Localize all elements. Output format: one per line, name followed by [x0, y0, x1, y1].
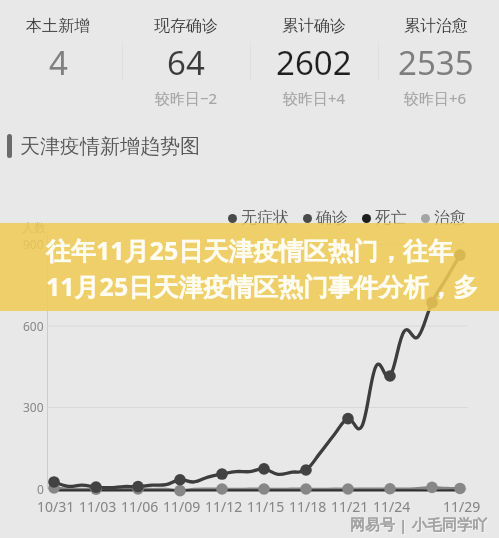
staticText: 11/09: [163, 497, 201, 516]
button[interactable]: 治愈: [421, 208, 466, 228]
staticText: 往年11月25日天津疫情区热门，往年 11月25日天津疫情区热门事件分析，多: [46, 233, 479, 304]
staticText: 无症状: [241, 208, 289, 228]
staticText: 人数: [22, 220, 46, 235]
staticText: 11/24: [373, 497, 411, 516]
button[interactable]: 无症状: [228, 208, 289, 228]
staticText: 死亡: [375, 208, 407, 228]
staticText: 11/06: [121, 497, 159, 516]
staticText: 较昨日+4: [283, 88, 346, 108]
staticText: 小毛同学吖: [412, 516, 487, 535]
staticText: 0: [37, 481, 44, 497]
button[interactable]: 累计治愈: [378, 0, 493, 112]
staticText: 900: [23, 236, 44, 252]
staticText: 小毛同学吖: [413, 517, 488, 536]
staticText: 2602: [276, 40, 352, 85]
staticText: 11/18: [289, 497, 327, 516]
button[interactable]: 现存确诊: [122, 0, 250, 112]
staticText: 累计治愈: [404, 16, 468, 36]
staticText: 较昨日+6: [404, 88, 467, 108]
button[interactable]: 本土新增: [0, 0, 122, 112]
staticText: 确诊: [316, 208, 348, 228]
staticText: 治愈: [434, 208, 466, 228]
staticText: 11/15: [247, 497, 285, 516]
staticText: 11/03: [79, 497, 117, 516]
staticText: |: [400, 516, 409, 536]
button[interactable]: 累计确诊: [250, 0, 378, 112]
staticText: 较昨日−2: [155, 88, 218, 108]
button[interactable]: 确诊: [303, 208, 348, 228]
staticText: 累计确诊: [282, 16, 346, 36]
staticText: 2535: [398, 40, 474, 85]
staticText: |: [399, 515, 408, 535]
staticText: 网易号: [350, 516, 395, 535]
staticText: 11/29: [443, 497, 481, 516]
staticText: 4: [49, 40, 68, 85]
staticText: 11/12: [205, 497, 243, 516]
staticText: 64: [167, 40, 205, 85]
staticText: 本土新增: [26, 16, 90, 36]
staticText: 网易号: [351, 517, 396, 536]
staticText: 11/21: [331, 497, 369, 516]
staticText: 现存确诊: [154, 16, 218, 36]
staticText: 天津疫情新增趋势图: [20, 134, 200, 159]
staticText: 10/31: [37, 497, 75, 516]
button[interactable]: 死亡: [362, 208, 407, 228]
staticText: 600: [23, 318, 44, 334]
staticText: 300: [23, 399, 44, 415]
